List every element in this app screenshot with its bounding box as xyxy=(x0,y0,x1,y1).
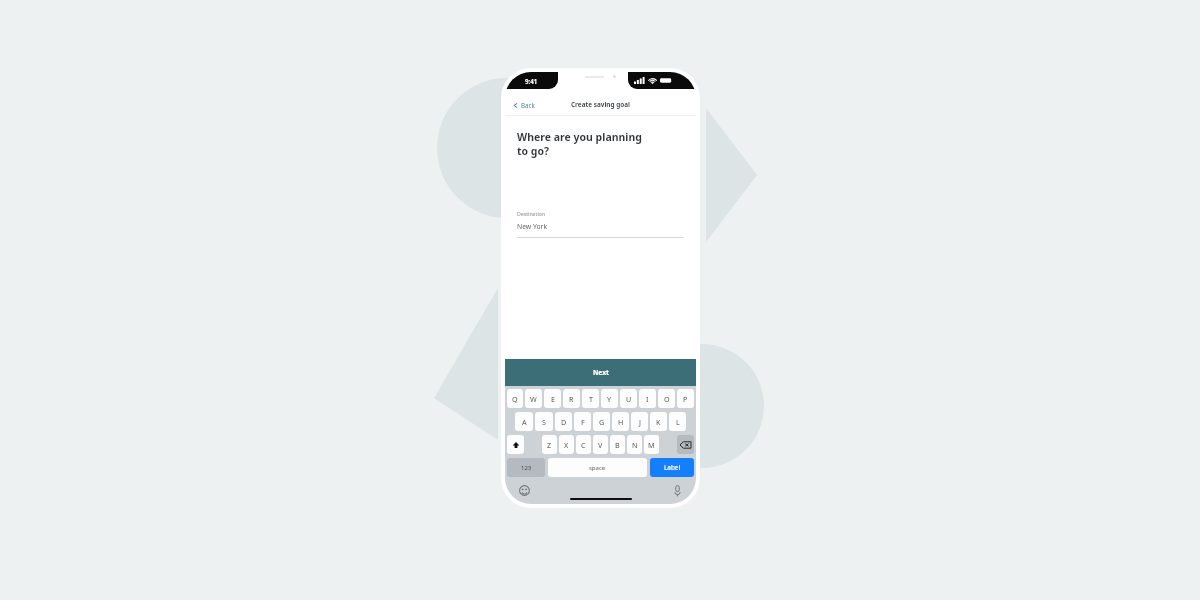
button[interactable]: Back xyxy=(513,101,535,109)
staticText: R xyxy=(569,394,574,404)
button[interactable]: Z xyxy=(542,435,557,454)
button[interactable]: space xyxy=(548,458,647,477)
staticText: J xyxy=(639,417,641,427)
button[interactable]: H xyxy=(612,412,629,431)
staticText: B xyxy=(615,440,620,450)
button[interactable]: U xyxy=(620,389,637,408)
button[interactable]: C xyxy=(576,435,591,454)
button[interactable]: J xyxy=(631,412,648,431)
button[interactable]: Backspace xyxy=(677,435,694,454)
button[interactable]: I xyxy=(639,389,656,408)
button[interactable]: L xyxy=(669,412,686,431)
staticText: Y xyxy=(607,394,612,404)
staticText: K xyxy=(656,417,661,427)
staticText: N xyxy=(632,440,638,450)
staticText: E xyxy=(551,394,555,404)
staticText: C xyxy=(581,440,586,450)
staticText: L xyxy=(676,417,680,427)
staticText: W xyxy=(530,394,537,404)
button[interactable]: Label xyxy=(650,458,694,477)
staticText: Create saving goal xyxy=(571,100,630,109)
staticText: space xyxy=(589,464,606,472)
button[interactable]: A xyxy=(515,412,533,431)
staticText: Q xyxy=(512,394,518,404)
staticText: P xyxy=(683,394,688,404)
staticText: T xyxy=(589,394,593,404)
staticText: U xyxy=(626,394,632,404)
staticText: H xyxy=(618,417,624,427)
button[interactable]: F xyxy=(574,412,591,431)
staticText: Back xyxy=(521,101,535,109)
staticText: D xyxy=(561,417,567,427)
staticText: A xyxy=(522,417,527,427)
button[interactable]: S xyxy=(535,412,553,431)
staticText: Destination xyxy=(517,210,546,217)
button[interactable]: K xyxy=(650,412,667,431)
button[interactable]: Next xyxy=(505,359,696,386)
button[interactable]: D xyxy=(555,412,572,431)
button[interactable]: Emoji xyxy=(519,485,530,496)
staticText: 9:41 xyxy=(525,77,538,85)
button[interactable]: Y xyxy=(601,389,618,408)
staticText: S xyxy=(542,417,546,427)
button[interactable]: P xyxy=(677,389,694,408)
button[interactable]: 123 xyxy=(507,458,545,477)
staticText: 123 xyxy=(521,464,532,472)
staticText: New York xyxy=(517,222,548,231)
staticText: Z xyxy=(547,440,552,450)
staticText: G xyxy=(599,417,605,427)
button[interactable]: B xyxy=(610,435,625,454)
staticText: F xyxy=(581,417,585,427)
button[interactable]: N xyxy=(627,435,642,454)
staticText: V xyxy=(598,440,603,450)
staticText: X xyxy=(564,440,569,450)
staticText: O xyxy=(664,394,670,404)
staticText: Next xyxy=(593,368,609,377)
button[interactable]: O xyxy=(658,389,675,408)
button[interactable]: E xyxy=(544,389,561,408)
button[interactable]: W xyxy=(525,389,542,408)
button[interactable]: R xyxy=(563,389,580,408)
button[interactable]: Q xyxy=(507,389,523,408)
button[interactable]: Voice input xyxy=(674,485,681,497)
button[interactable]: T xyxy=(582,389,599,408)
staticText: M xyxy=(648,440,655,450)
staticText: I xyxy=(646,394,649,404)
staticText: Label xyxy=(664,463,681,472)
button[interactable]: G xyxy=(593,412,610,431)
button[interactable]: X xyxy=(559,435,574,454)
button[interactable]: Shift xyxy=(507,435,524,454)
button[interactable]: V xyxy=(593,435,608,454)
staticText: Where are you planning to go? xyxy=(517,130,642,158)
button[interactable]: M xyxy=(644,435,659,454)
